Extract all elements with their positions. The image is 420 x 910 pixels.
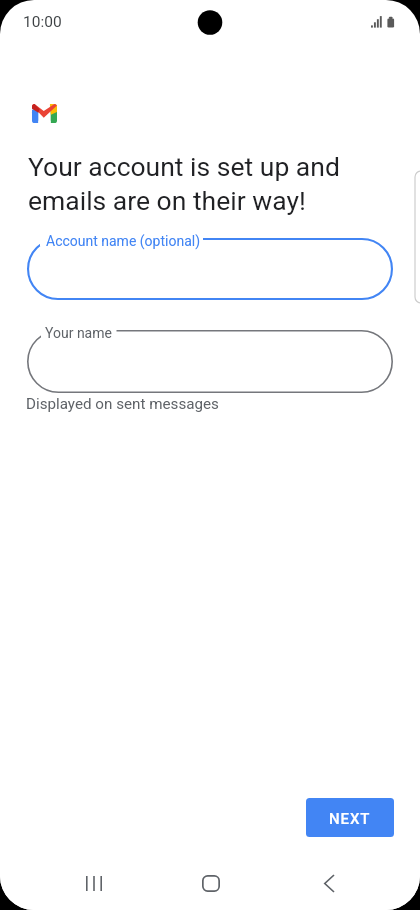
staticText: Your name: [45, 325, 112, 341]
staticText: Displayed on sent messages: [26, 395, 219, 413]
button[interactable]: NEXT: [306, 798, 394, 837]
staticText: Account name (optional): [46, 233, 201, 249]
button[interactable]: Home: [190, 863, 231, 904]
button[interactable]: Account name (optional): [27, 238, 393, 300]
button[interactable]: Back: [308, 863, 349, 904]
staticText: 10:00: [23, 13, 62, 31]
button[interactable]: Your name: [27, 330, 393, 393]
button[interactable]: Recent apps: [73, 863, 114, 904]
staticText: NEXT: [329, 810, 371, 828]
staticText: Your account is set up and emails are on…: [28, 151, 340, 216]
